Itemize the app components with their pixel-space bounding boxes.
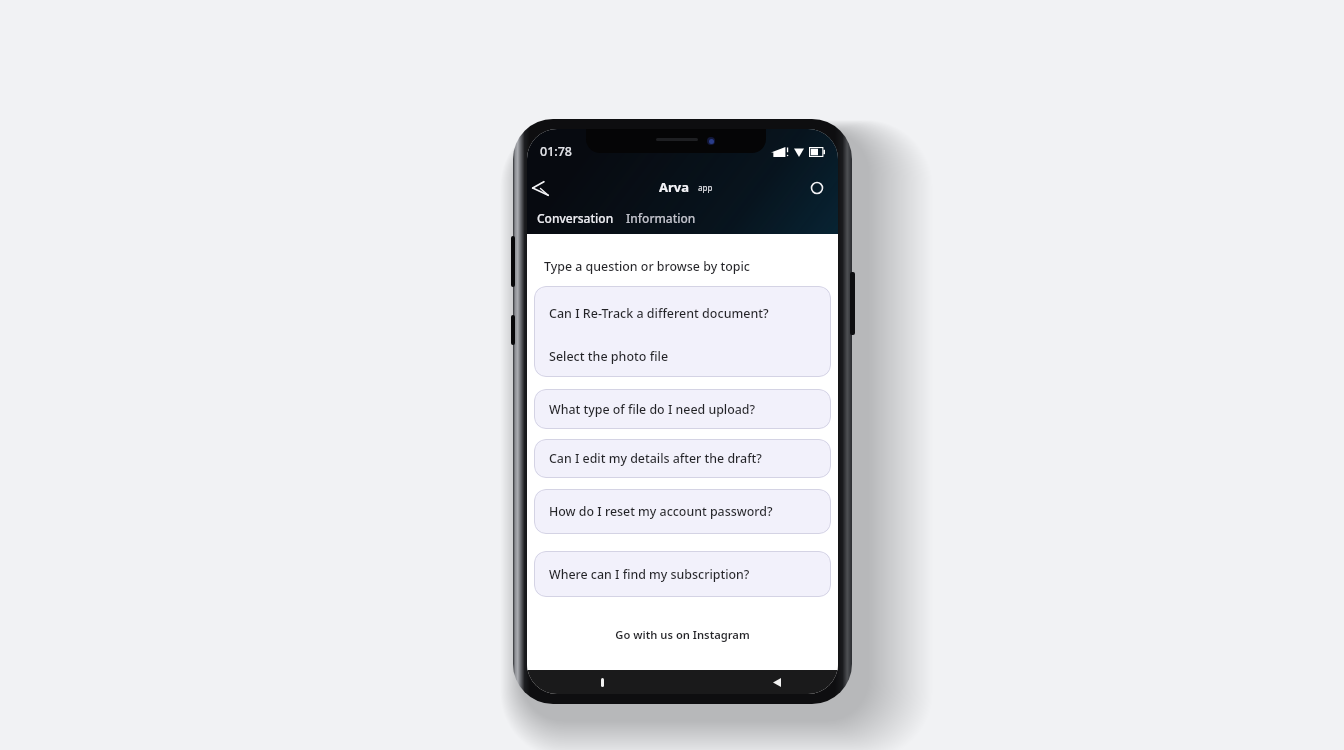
- button[interactable]: Can I Re-Track a different document?: [534, 286, 831, 377]
- staticText: 01:78: [540, 143, 573, 160]
- staticText: Where can I find my subscription?: [549, 566, 750, 583]
- button[interactable]: Home: [599, 676, 606, 689]
- staticText: How do I reset my account password?: [549, 503, 773, 520]
- button[interactable]: Back: [770, 676, 783, 689]
- button[interactable]: What type of file do I need upload?: [534, 389, 831, 429]
- staticText: Type a question or browse by topic: [544, 258, 750, 275]
- staticText: Can I edit my details after the draft?: [549, 450, 762, 467]
- button[interactable]: Conversation: [537, 207, 614, 229]
- button[interactable]: Can I edit my details after the draft?: [534, 439, 831, 478]
- button[interactable]: Back: [528, 175, 554, 201]
- button[interactable]: Go with us on Instagram: [534, 627, 831, 642]
- staticText: Arva: [659, 178, 690, 196]
- staticText: app: [698, 182, 713, 193]
- button[interactable]: Information: [626, 207, 696, 229]
- staticText: Can I Re-Track a different document?: [549, 305, 769, 322]
- button[interactable]: How do I reset my account password?: [534, 489, 831, 534]
- button[interactable]: Where can I find my subscription?: [534, 551, 831, 597]
- button[interactable]: Profile: [804, 175, 830, 201]
- staticText: Conversation: [537, 210, 614, 226]
- staticText: Select the photo file: [549, 348, 669, 365]
- staticText: What type of file do I need upload?: [549, 401, 756, 418]
- staticText: Information: [626, 210, 696, 226]
